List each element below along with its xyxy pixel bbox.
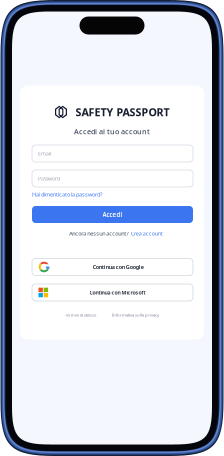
button[interactable]: Termini di utilizzo [65, 312, 96, 318]
button[interactable]: Informativa sulla privacy [112, 312, 159, 318]
button[interactable]: Continua con Microsoft [32, 284, 193, 301]
staticText: Ancora nessun account? [69, 230, 128, 237]
staticText: Continua con Microsoft [90, 289, 146, 296]
staticText: Accedi [102, 210, 122, 219]
button[interactable]: Password [32, 170, 193, 187]
button[interactable]: Crea account [131, 230, 163, 237]
staticText: Password [38, 175, 60, 182]
staticText: SAFETY PASSPORT [75, 105, 169, 119]
staticText: Continua con Google [93, 263, 144, 271]
button[interactable]: Email [32, 145, 193, 162]
button[interactable]: Continua con Google [32, 258, 193, 275]
staticText: Informativa sulla privacy [112, 312, 159, 318]
button[interactable]: Accedi [32, 206, 193, 223]
staticText: Hai dimenticato la password? [32, 190, 102, 198]
staticText: Accedi al tuo account [74, 127, 150, 136]
staticText: Crea account [131, 230, 163, 237]
staticText: Email [38, 150, 51, 157]
staticText: Termini di utilizzo [65, 312, 96, 318]
button[interactable]: Hai dimenticato la password? [32, 190, 102, 198]
